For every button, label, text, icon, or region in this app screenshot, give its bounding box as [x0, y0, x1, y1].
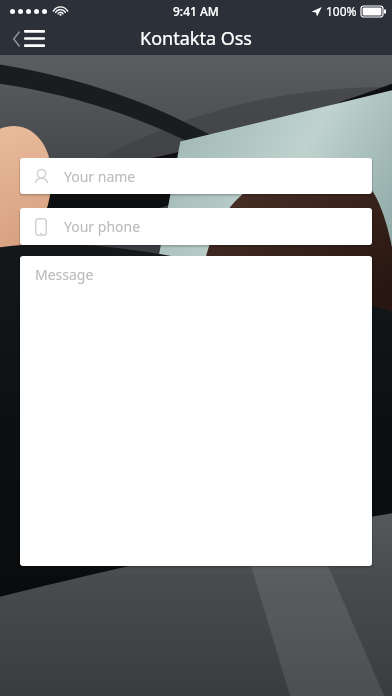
button[interactable]: Your phone [20, 208, 372, 245]
button[interactable]: Your name [20, 158, 372, 194]
staticText: 9:41 AM [173, 3, 219, 19]
staticText: Your name [64, 167, 136, 186]
button[interactable]: Menu [0, 22, 55, 55]
staticText: 100% [326, 3, 357, 19]
staticText: Your phone [64, 217, 141, 236]
staticText: Kontakta Oss [140, 26, 252, 51]
staticText: Message [35, 265, 94, 284]
